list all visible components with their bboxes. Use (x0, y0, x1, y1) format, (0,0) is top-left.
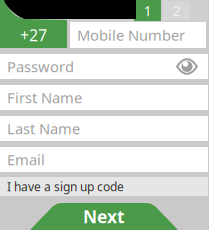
button[interactable]: 2 (163, 1, 190, 20)
button[interactable]: First Name (0, 85, 208, 110)
staticText: Next (83, 205, 125, 228)
button[interactable]: 1 (134, 0, 161, 21)
button[interactable]: Next (0, 203, 208, 230)
staticText: Last Name (7, 119, 80, 138)
button[interactable]: Mobile Number (70, 22, 208, 48)
staticText: +27 (20, 24, 47, 46)
button[interactable]: +27 (0, 22, 67, 48)
staticText: Email (7, 150, 45, 169)
button[interactable]: I have a sign up code (0, 177, 208, 196)
staticText: I have a sign up code (7, 178, 124, 194)
staticText: Password (7, 57, 74, 76)
button[interactable]: Last Name (0, 116, 208, 141)
staticText: 1 (143, 1, 151, 20)
button[interactable]: Email (0, 147, 208, 172)
staticText: Mobile Number (77, 25, 185, 45)
staticText: First Name (7, 88, 82, 107)
button[interactable]: Password (0, 54, 208, 79)
staticText: 2 (172, 1, 180, 20)
